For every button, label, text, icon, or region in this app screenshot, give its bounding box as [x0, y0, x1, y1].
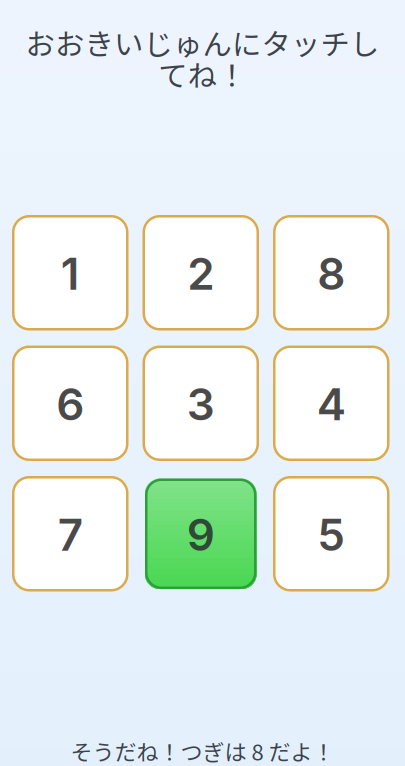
button[interactable]: 6 — [12, 345, 128, 461]
staticText: 7 — [58, 508, 83, 561]
staticText: おおきいじゅんにタッチしてね！ — [25, 21, 379, 95]
staticText: 2 — [187, 247, 214, 300]
staticText: そうだね！つぎは 8 だよ！ — [70, 735, 334, 766]
staticText: 1 — [61, 247, 80, 300]
button[interactable]: 5 — [273, 476, 389, 591]
staticText: 9 — [187, 508, 215, 561]
staticText: 5 — [317, 508, 345, 561]
staticText: 3 — [187, 378, 215, 431]
staticText: 6 — [56, 378, 84, 431]
button[interactable]: 8 — [273, 215, 389, 330]
button[interactable]: 1 — [12, 215, 128, 330]
button[interactable]: 7 — [12, 476, 128, 591]
button[interactable]: 2 — [142, 215, 259, 330]
staticText: 4 — [317, 378, 346, 431]
button[interactable]: 9 — [142, 476, 259, 591]
button[interactable]: 4 — [273, 345, 389, 461]
staticText: 8 — [317, 247, 345, 300]
button[interactable]: 3 — [142, 345, 259, 461]
